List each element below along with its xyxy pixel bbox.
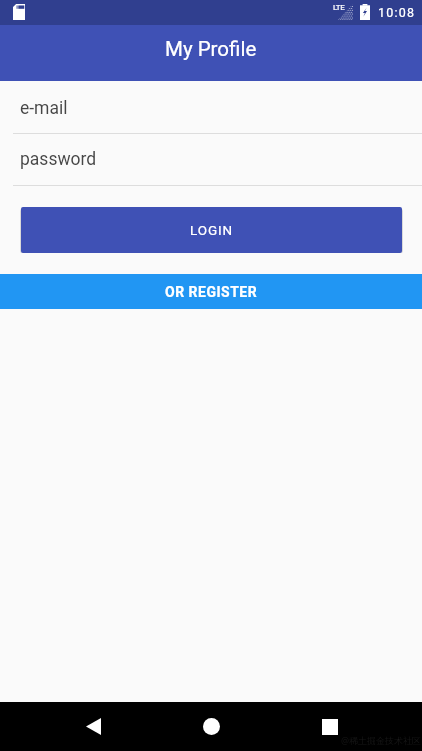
- staticText: password: [20, 149, 97, 170]
- button[interactable]: LOGIN: [21, 207, 402, 253]
- button[interactable]: Home: [187, 702, 235, 751]
- staticText: e-mail: [20, 98, 68, 119]
- staticText: LOGIN: [190, 222, 234, 238]
- staticText: LTE: [333, 3, 345, 12]
- button[interactable]: Back: [69, 702, 117, 751]
- button[interactable]: OR REGISTER: [0, 274, 422, 309]
- button[interactable]: Recent apps: [306, 702, 354, 751]
- staticText: @稀土掘金技术社区: [341, 734, 422, 746]
- staticText: 10:08: [378, 5, 416, 20]
- staticText: OR REGISTER: [165, 284, 258, 300]
- staticText: My Profile: [165, 37, 257, 61]
- button[interactable]: password: [0, 134, 422, 186]
- button[interactable]: e-mail: [0, 81, 422, 134]
